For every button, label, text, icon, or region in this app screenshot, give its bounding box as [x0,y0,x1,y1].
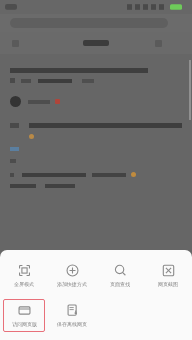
other: 全屏模式 [18,264,31,277]
staticText: 网页截图 [158,281,178,287]
button[interactable]: 网页截图 [144,259,192,292]
staticText: 保存离线网页 [57,321,87,327]
button[interactable]: 全屏模式 [0,259,48,292]
staticText: 添加快捷方式 [57,281,87,287]
button[interactable]: 添加快捷方式 [48,259,96,292]
other: 添加快捷方式 [66,264,79,277]
button[interactable]: 保存离线网页 [48,299,96,332]
staticText: 访问网页版 [12,321,37,327]
other: 网页截图 [162,264,175,277]
button[interactable]: 访问网页版 [3,299,45,332]
other: 保存离线网页 [66,304,79,317]
other: 页面查找 [114,264,127,277]
staticText: 页面查找 [110,281,130,287]
button[interactable]: 页面查找 [96,259,144,292]
other: 访问网页版 [18,304,31,317]
staticText: 全屏模式 [14,281,34,287]
